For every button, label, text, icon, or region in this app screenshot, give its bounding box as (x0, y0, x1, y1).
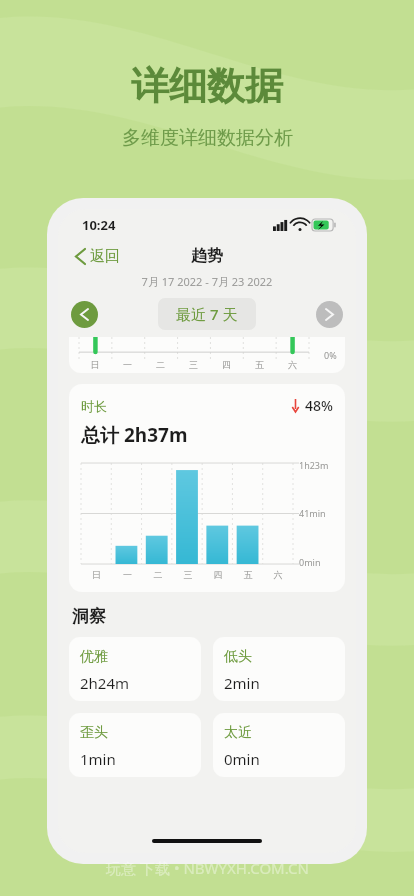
staticText: 歪头 (80, 724, 108, 742)
staticText: 低头 (224, 648, 252, 666)
button[interactable]: 日 (69, 337, 345, 373)
staticText: 10:24 (82, 216, 116, 234)
staticText: 时长 (81, 398, 107, 414)
staticText: 五 (233, 569, 263, 580)
button[interactable]: 低头 (213, 637, 345, 701)
staticText: 二 (144, 359, 177, 370)
staticText: 1min (80, 749, 116, 769)
staticText: 优雅 (80, 648, 108, 666)
staticText: 0min (224, 749, 260, 769)
staticText: 趋势 (191, 246, 223, 266)
staticText: 三 (173, 569, 203, 580)
staticText: 四 (203, 569, 233, 580)
staticText: 日 (81, 569, 112, 580)
staticText: 0min (299, 556, 321, 568)
staticText: 返回 (90, 247, 120, 266)
staticText: 四 (210, 359, 243, 370)
staticText: 六 (263, 569, 293, 580)
button[interactable]: 优雅 (69, 637, 201, 701)
staticText: 二 (143, 569, 173, 580)
staticText: 六 (276, 359, 309, 370)
staticText: 41min (299, 507, 326, 519)
staticText: 太近 (224, 724, 252, 742)
button[interactable]: Previous period (71, 301, 98, 328)
staticText: 日 (79, 359, 111, 370)
staticText: 2min (224, 673, 260, 693)
staticText: 详细数据 (131, 62, 283, 110)
staticText: 三 (177, 359, 210, 370)
staticText: 1h23m (299, 459, 329, 471)
staticText: 洞察 (72, 606, 106, 627)
staticText: 0% (324, 349, 337, 361)
button[interactable]: 时长 (69, 384, 345, 592)
staticText: 多维度详细数据分析 (122, 126, 293, 150)
button[interactable]: 太近 (213, 713, 345, 777)
staticText: 五 (243, 359, 276, 370)
button[interactable]: 返回 (72, 243, 124, 270)
staticText: 7月 17 2022 - 7月 23 2022 (58, 274, 356, 289)
button[interactable]: 最近 7 天 (158, 298, 256, 330)
staticText: 2h24m (80, 673, 130, 693)
button[interactable]: 歪头 (69, 713, 201, 777)
staticText: 最近 7 天 (176, 304, 238, 324)
staticText: 总计 2h37m (81, 422, 188, 448)
staticText: 一 (112, 569, 143, 580)
staticText: 48% (305, 396, 333, 415)
button[interactable]: Next period (316, 301, 343, 328)
staticText: 玩意 下载 • NBWYXH.COM.CN (106, 858, 309, 878)
staticText: 一 (111, 359, 144, 370)
